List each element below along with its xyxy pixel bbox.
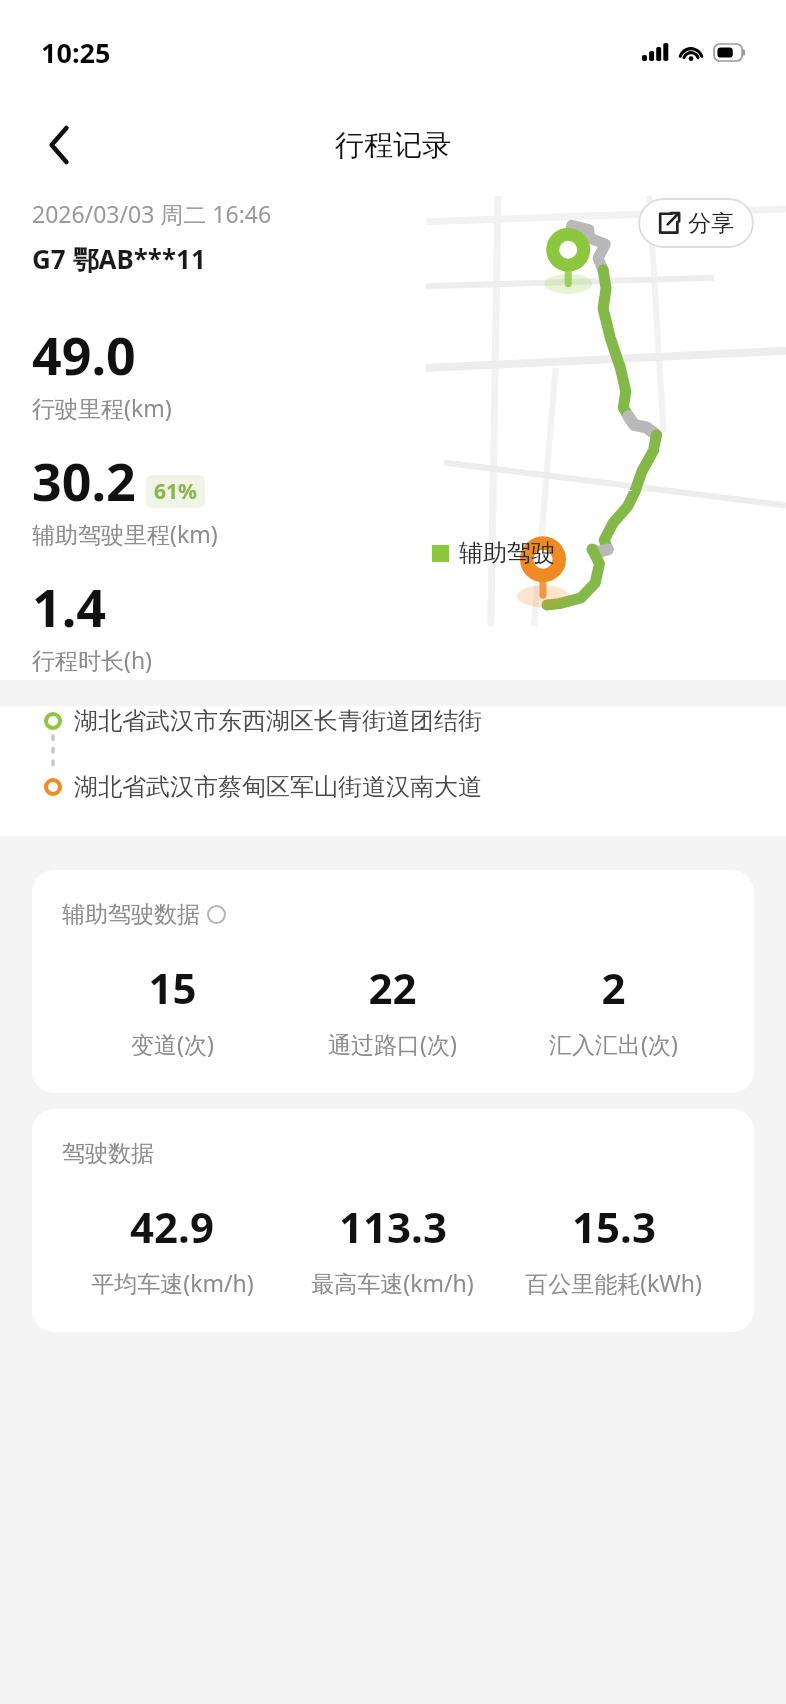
staticText: 汇入汇出(次) — [549, 1028, 678, 1059]
staticText: 行程记录 — [335, 127, 451, 164]
staticText: 最高车速(km/h) — [311, 1267, 474, 1298]
staticText: G7 鄂AB***11 — [32, 241, 206, 277]
staticText: 30.2 — [32, 445, 136, 516]
staticText: 驾驶数据 — [62, 1139, 154, 1168]
staticText: 辅助驾驶数据 — [62, 900, 200, 929]
staticText: 15 — [148, 959, 197, 1016]
staticText: 15.3 — [572, 1198, 656, 1255]
button[interactable]: 分享 — [638, 198, 754, 248]
staticText: 湖北省武汉市蔡甸区军山街道汉南大道 — [74, 772, 482, 802]
staticText: 变道(次) — [131, 1028, 214, 1059]
staticText: 10:25 — [41, 34, 111, 71]
staticText: 通过路口(次) — [328, 1028, 457, 1059]
other: Info — [207, 905, 226, 924]
staticText: 2 — [601, 959, 626, 1016]
button[interactable]: 辅助驾驶数据 — [32, 870, 754, 1093]
staticText: 辅助驾驶里程(km) — [32, 518, 218, 549]
staticText: 湖北省武汉市东西湖区长青街道团结街 — [74, 706, 482, 736]
button[interactable]: Back — [28, 113, 92, 177]
staticText: 49.0 — [32, 319, 136, 390]
staticText: 辅助驾驶 — [459, 538, 555, 568]
staticText: 1.4 — [32, 571, 107, 642]
staticText: 分享 — [688, 209, 734, 238]
staticText: 平均车速(km/h) — [91, 1267, 254, 1298]
staticText: 61% — [154, 477, 197, 506]
staticText: 113.3 — [339, 1198, 447, 1255]
staticText: 42.9 — [130, 1198, 214, 1255]
staticText: 2026/03/03 周二 16:46 — [32, 198, 272, 229]
button[interactable]: 驾驶数据 — [32, 1109, 754, 1332]
staticText: 行程时长(h) — [32, 644, 153, 675]
staticText: 行驶里程(km) — [32, 392, 172, 423]
staticText: 百公里能耗(kWh) — [525, 1267, 702, 1298]
staticText: 22 — [368, 959, 417, 1016]
